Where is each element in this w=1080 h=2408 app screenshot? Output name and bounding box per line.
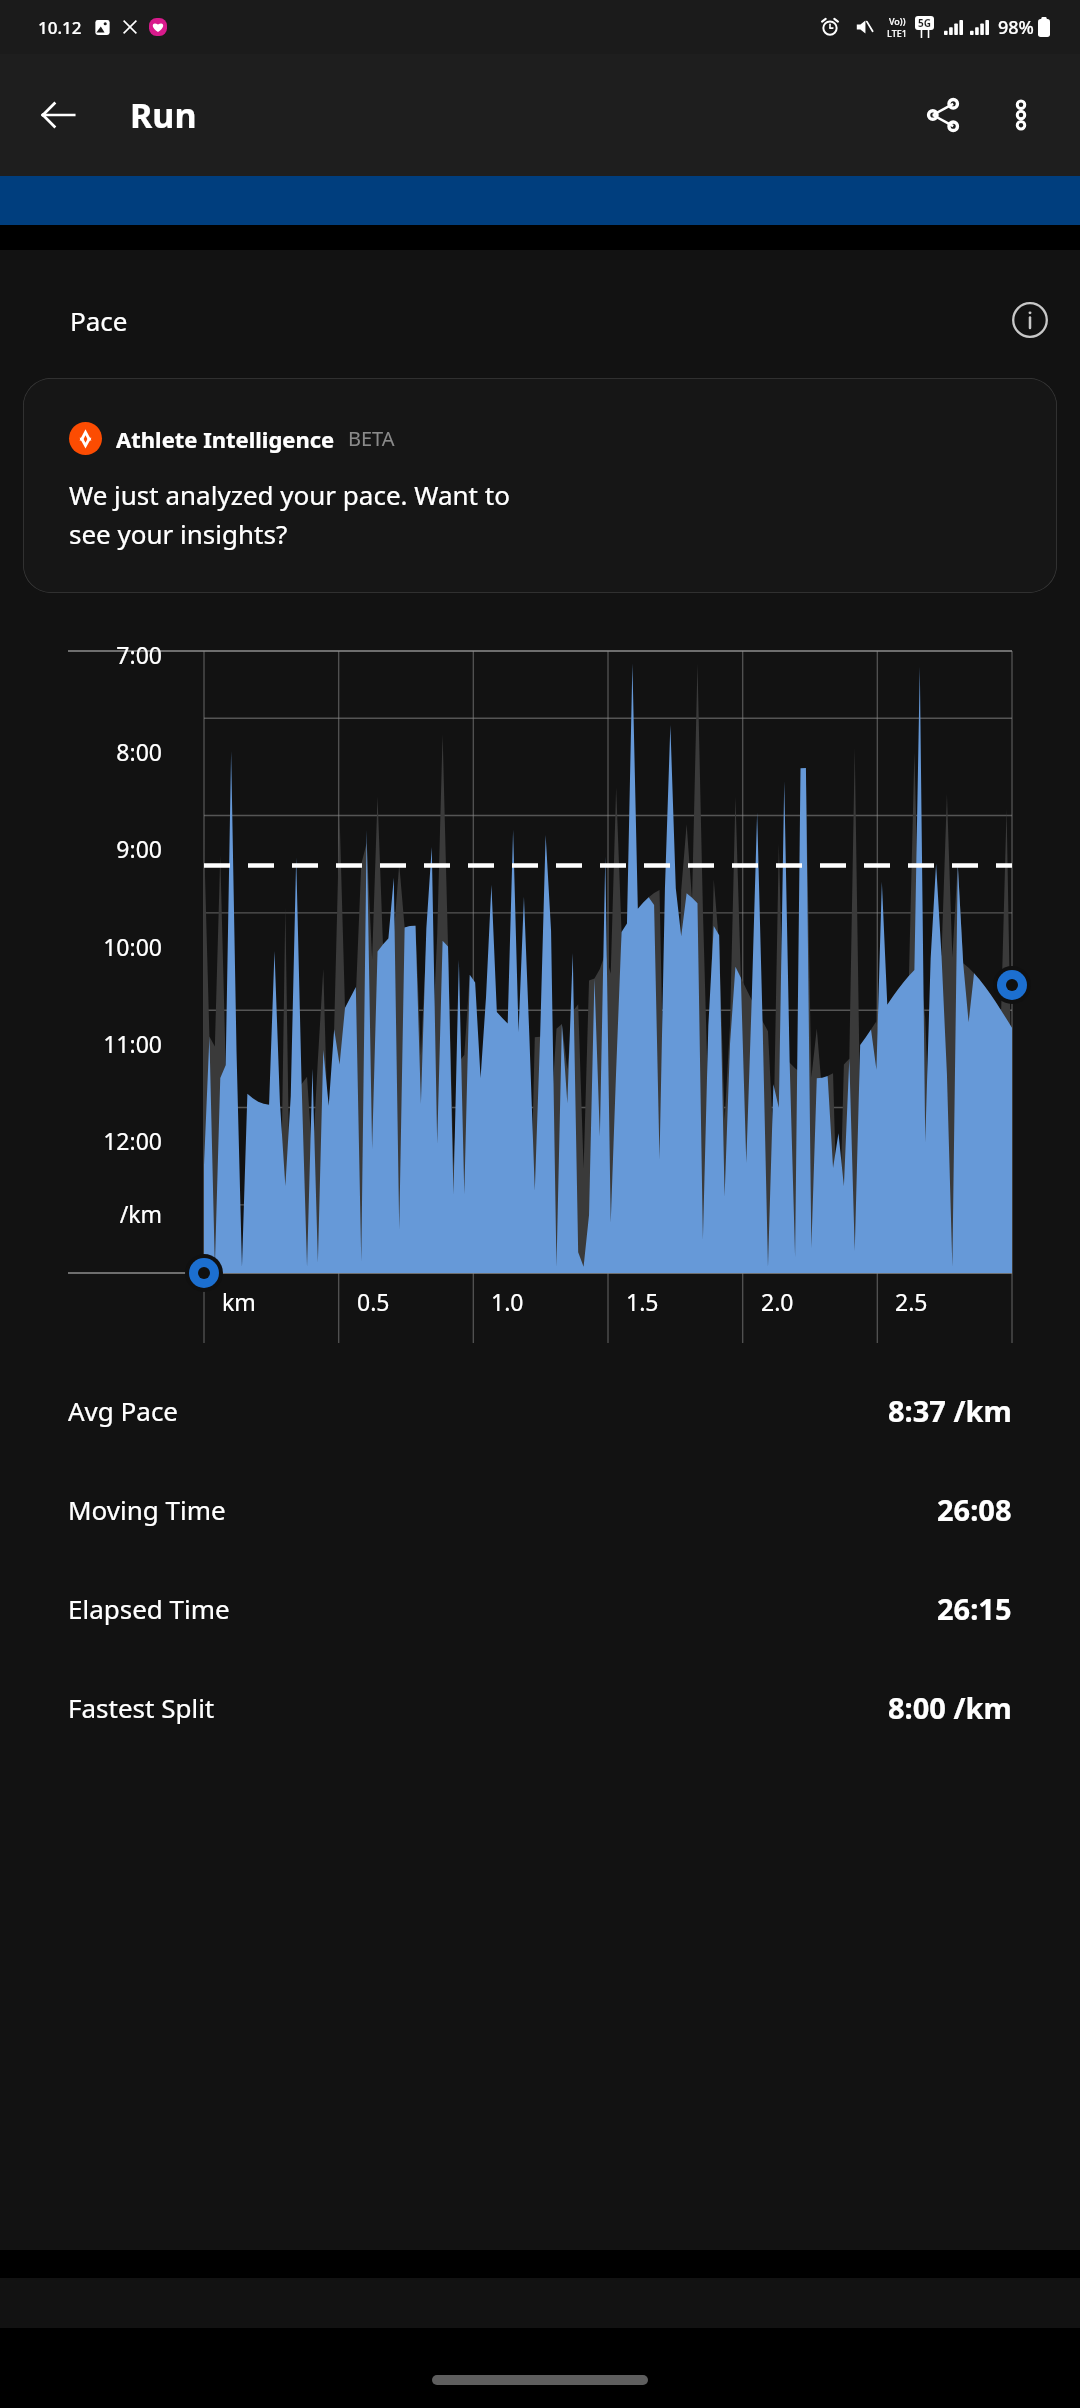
button[interactable]: Information	[1002, 292, 1058, 348]
staticText: 2.5	[895, 1286, 928, 1317]
button[interactable]: Avg Pace	[68, 1361, 1012, 1460]
staticText: 0.5	[357, 1286, 390, 1317]
button[interactable]: Athlete Intelligence	[23, 378, 1057, 593]
staticText: 26:15	[937, 1589, 1012, 1628]
staticText: 98%	[998, 15, 1034, 40]
staticText: BETA	[348, 425, 395, 452]
staticText: 2.0	[761, 1286, 794, 1317]
staticText: 10.12	[38, 16, 82, 39]
button[interactable]: Share	[904, 76, 982, 154]
staticText: Pace	[70, 303, 128, 338]
staticText: Moving Time	[68, 1492, 226, 1527]
staticText: 10:00	[0, 931, 162, 962]
button[interactable]: More options	[982, 76, 1060, 154]
button[interactable]: Moving Time	[68, 1460, 1012, 1559]
staticText: 26:08	[937, 1490, 1012, 1529]
staticText: 1.5	[626, 1286, 659, 1317]
staticText: Avg Pace	[68, 1393, 179, 1428]
staticText: 8:00	[0, 736, 162, 767]
staticText: 5G	[918, 16, 931, 30]
staticText: 7:00	[0, 639, 162, 670]
button[interactable]: 7:00	[0, 621, 1080, 1321]
staticText: 8:00 /km	[888, 1688, 1012, 1727]
staticText: Elapsed Time	[68, 1591, 230, 1626]
staticText: LTE1	[887, 27, 907, 39]
staticText: 9:00	[0, 833, 162, 864]
button[interactable]: Elapsed Time	[68, 1559, 1012, 1658]
staticText: Fastest Split	[68, 1690, 215, 1725]
button[interactable]: Fastest Split	[68, 1658, 1012, 1757]
staticText: Vo))	[889, 15, 906, 27]
button[interactable]: Pace	[22, 288, 1058, 352]
staticText: Athlete Intelligence	[116, 424, 335, 454]
staticText: /km	[0, 1198, 162, 1229]
staticText: 12:00	[0, 1125, 162, 1156]
button[interactable]: Back	[22, 79, 94, 151]
staticText: Run	[130, 92, 197, 138]
staticText: 8:37 /km	[888, 1391, 1012, 1430]
staticText: We just analyzed your pace. Want to see …	[69, 477, 510, 551]
staticText: 1.0	[491, 1286, 524, 1317]
staticText: 11:00	[0, 1028, 162, 1059]
staticText: km	[222, 1286, 256, 1317]
